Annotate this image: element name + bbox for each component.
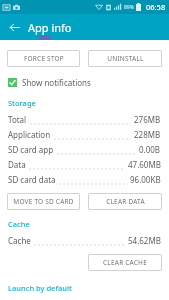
button[interactable]: MOVE TO SD CARD — [7, 193, 80, 210]
staticText: 96.00KB — [130, 174, 161, 185]
staticText: Application — [8, 129, 51, 140]
staticText: 06:58 — [146, 2, 166, 12]
staticText: SD card app — [8, 144, 54, 155]
button[interactable]: UNINSTALL — [88, 50, 162, 67]
staticText: 54.62MB — [128, 235, 161, 246]
button[interactable]: CLEAR CACHE — [88, 254, 162, 271]
staticText: CLEAR CACHE — [103, 258, 147, 267]
staticText: Show notifications — [22, 77, 91, 88]
button[interactable]: Cache — [0, 233, 169, 248]
staticText: 47.60MB — [128, 159, 161, 170]
staticText: Storage — [8, 98, 36, 108]
staticText: Total — [8, 114, 27, 125]
button[interactable]: SD card data — [0, 172, 169, 187]
staticText: SD card data — [8, 174, 56, 185]
staticText: 276MB — [134, 114, 161, 125]
button[interactable]: Total — [0, 112, 169, 127]
staticText: 228MB — [134, 129, 161, 140]
staticText: FORCE STOP — [24, 54, 64, 63]
staticText: 89% — [124, 4, 134, 11]
staticText: Cache — [8, 235, 31, 246]
staticText: CLEAR DATA — [106, 197, 145, 206]
staticText: MOVE TO SD CARD — [13, 197, 74, 206]
button[interactable]: Back — [0, 14, 28, 40]
button[interactable]: Data — [0, 157, 169, 172]
button[interactable]: Cache — [0, 219, 169, 229]
button[interactable]: SD card app — [0, 142, 169, 157]
button[interactable]: Storage — [0, 98, 169, 108]
button[interactable]: Application — [0, 127, 169, 142]
staticText: Launch by default — [8, 283, 72, 293]
staticText: Data — [8, 159, 26, 170]
button[interactable]: CLEAR DATA — [88, 193, 162, 210]
button[interactable]: FORCE STOP — [7, 50, 80, 67]
staticText: App info — [28, 20, 72, 35]
staticText: 0.00B — [139, 144, 161, 155]
staticText: UNINSTALL — [107, 54, 144, 63]
staticText: Cache — [8, 219, 30, 229]
button[interactable]: Launch by default — [0, 283, 169, 293]
button[interactable]: Show notifications — [0, 76, 169, 89]
